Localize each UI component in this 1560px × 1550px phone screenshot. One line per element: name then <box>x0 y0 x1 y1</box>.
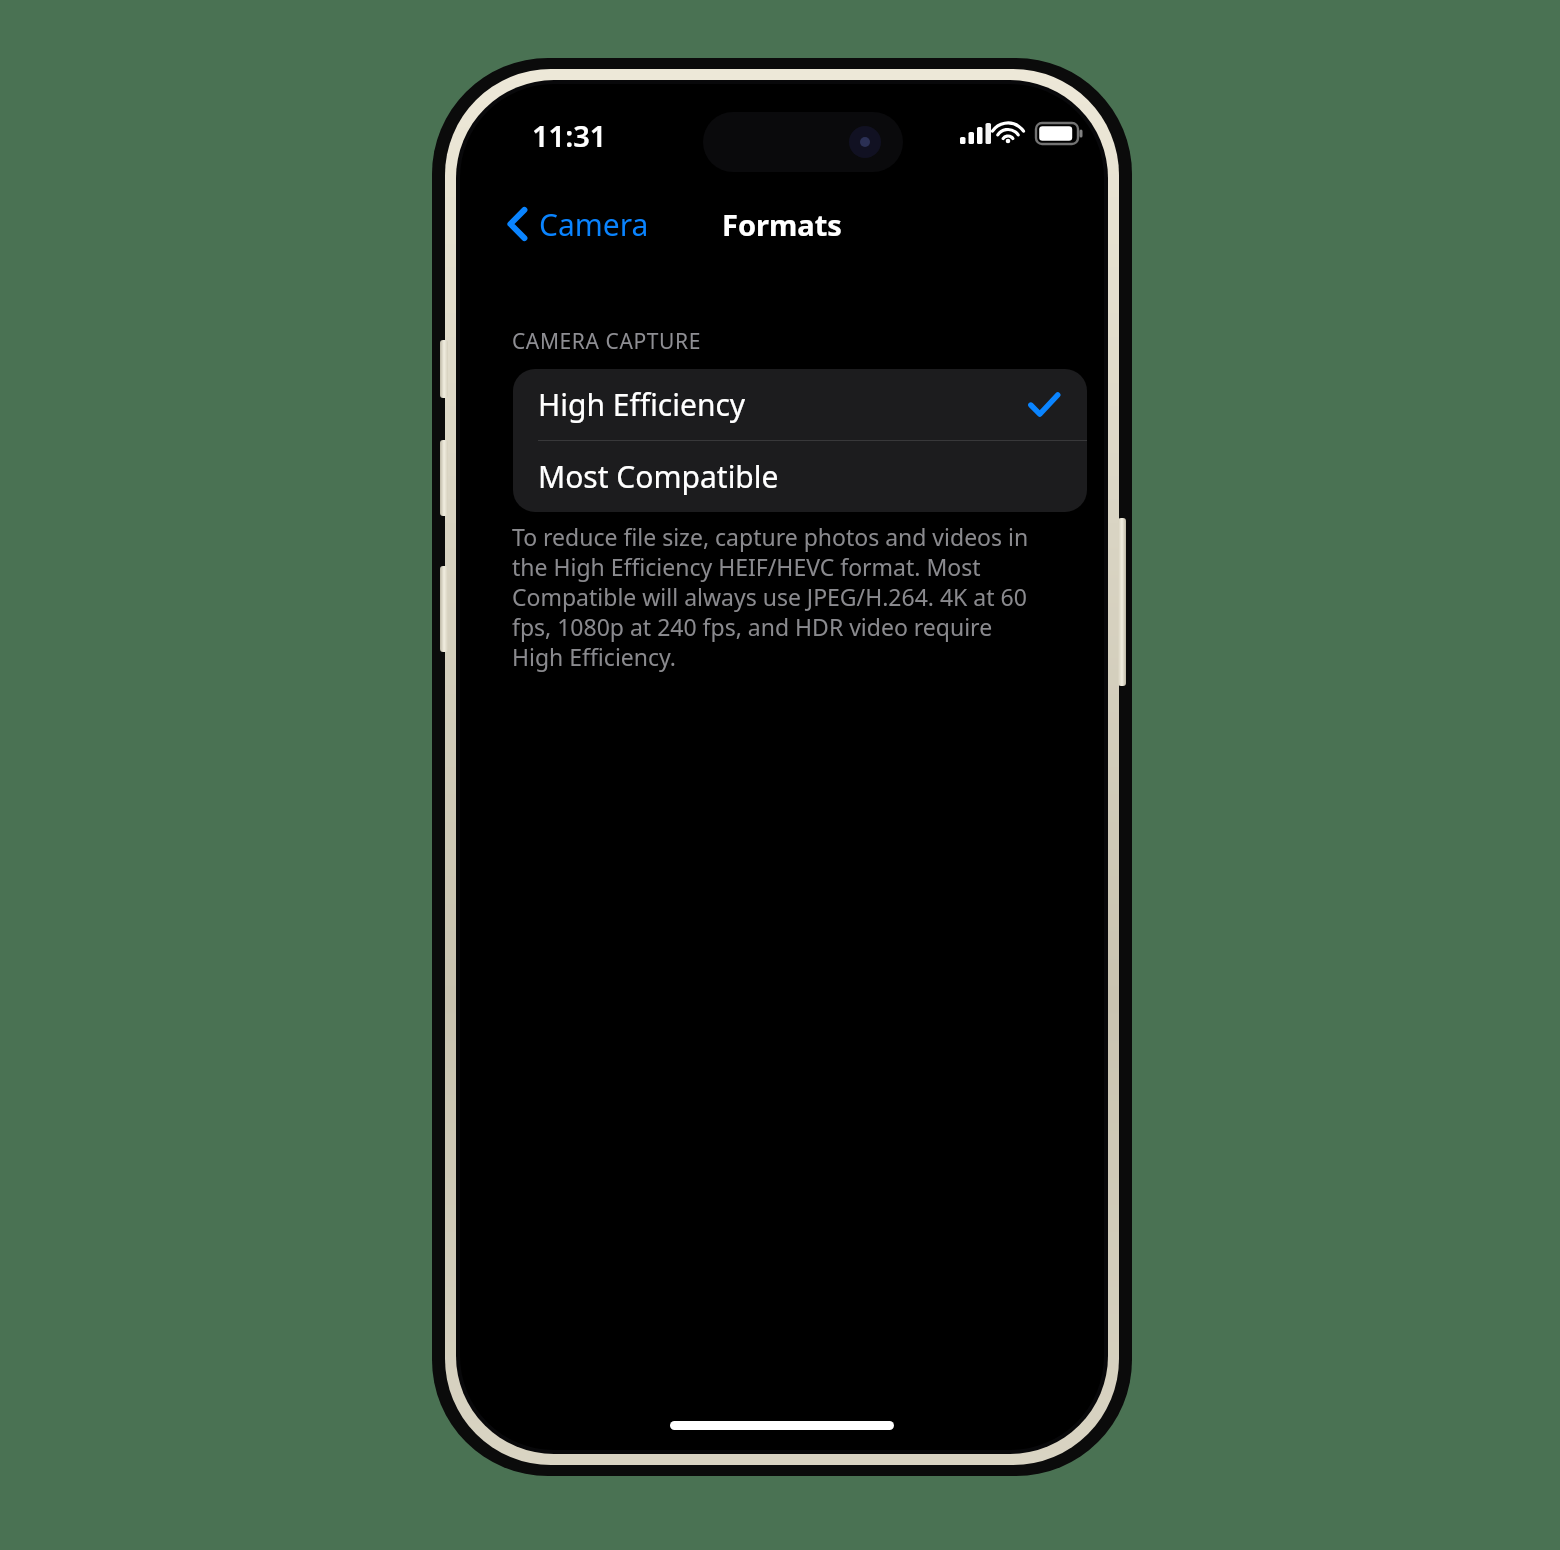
staticText: CAMERA CAPTURE <box>512 327 701 356</box>
staticText: Formats <box>722 205 842 244</box>
staticText: To reduce file size, capture photos and … <box>512 521 1042 672</box>
staticText: 11:31 <box>532 116 607 155</box>
button[interactable]: Camera <box>500 196 657 252</box>
staticText: Most Compatible <box>538 456 779 497</box>
button[interactable]: Most Compatible <box>513 441 1087 512</box>
staticText: High Efficiency <box>538 384 746 425</box>
button[interactable]: High Efficiency <box>513 369 1087 440</box>
staticText: Camera <box>539 204 649 245</box>
